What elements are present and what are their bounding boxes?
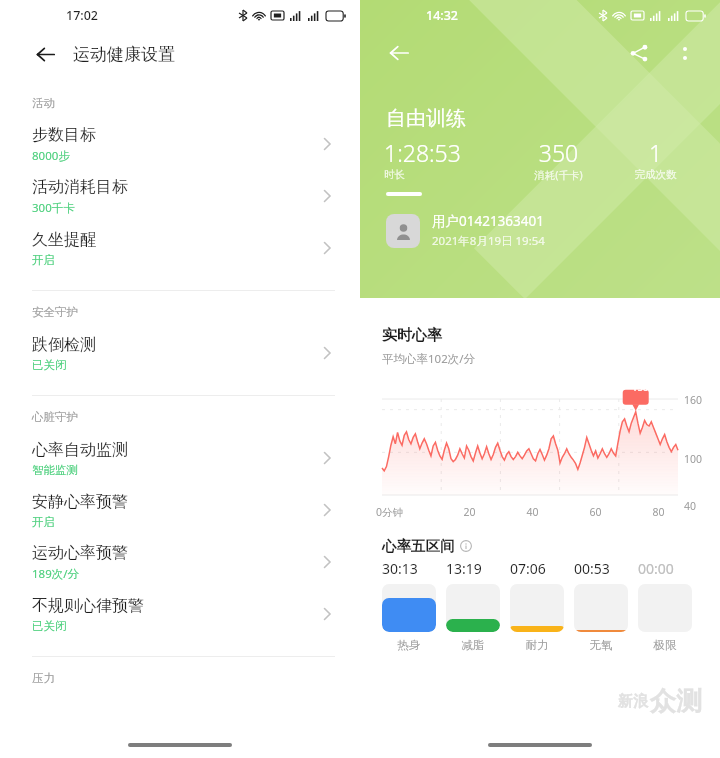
staticText: 60	[564, 505, 627, 519]
staticText: 40	[684, 499, 697, 513]
staticText: 安静心率预警	[32, 492, 128, 512]
staticText: 17:02	[66, 7, 99, 24]
staticText: 安全守护	[32, 305, 78, 319]
staticText: 减脂	[446, 638, 500, 652]
staticText: 无氧	[574, 638, 628, 652]
staticText: 自由训练	[386, 106, 466, 131]
staticText: 已关闭	[32, 619, 67, 633]
staticText: 心率自动监测	[32, 440, 128, 460]
staticText: 100	[684, 452, 703, 466]
button[interactable]: 久坐提醒	[0, 222, 360, 274]
staticText: 开启	[32, 253, 55, 267]
staticText: 热身	[382, 638, 436, 652]
staticText: 已关闭	[32, 358, 67, 372]
staticText: 1	[607, 137, 704, 168]
staticText: 消耗(千卡)	[510, 168, 607, 182]
staticText: 2021年8月19日 19:54	[432, 233, 545, 249]
staticText: 不规则心律预警	[32, 596, 144, 616]
staticText: 07:06	[510, 559, 574, 578]
staticText: 运动健康设置	[73, 44, 175, 65]
staticText: 智能监测	[32, 463, 78, 477]
staticText: 00:00	[638, 559, 702, 578]
staticText: 心率五区间	[382, 537, 455, 555]
staticText: 14:32	[426, 7, 459, 24]
staticText: 活动消耗目标	[32, 177, 128, 197]
staticText: 运动心率预警	[32, 543, 128, 563]
staticText: 1:28:53	[384, 137, 510, 168]
staticText: 心脏守护	[32, 410, 78, 424]
staticText: 实时心率	[382, 326, 442, 345]
staticText: 步数目标	[32, 125, 96, 145]
button[interactable]: More options	[670, 38, 700, 68]
staticText: 0分钟	[376, 505, 438, 519]
staticText: 300千卡	[32, 200, 75, 216]
staticText: 156	[632, 381, 649, 394]
staticText: 耐力	[510, 638, 564, 652]
staticText: 新浪	[618, 692, 648, 711]
button[interactable]: 不规则心律预警	[0, 588, 360, 640]
button[interactable]: 跌倒检测	[0, 327, 360, 379]
staticText: 跌倒检测	[32, 335, 96, 355]
staticText: 完成次数	[607, 168, 704, 181]
staticText: 活动	[32, 96, 55, 110]
button[interactable]: Back	[30, 39, 60, 69]
staticText: 开启	[32, 515, 55, 529]
staticText: 80	[627, 505, 690, 519]
staticText: 13:19	[446, 559, 510, 578]
staticText: 用户01421363401	[432, 212, 544, 230]
staticText: 8000步	[32, 148, 70, 164]
button[interactable]: 活动消耗目标	[0, 170, 360, 222]
button[interactable]: 安静心率预警	[0, 484, 360, 536]
staticText: 平均心率102次/分	[382, 351, 476, 367]
staticText: 189次/分	[32, 566, 80, 582]
staticText: 30:13	[382, 559, 446, 578]
staticText: 众测	[650, 685, 702, 718]
staticText: 久坐提醒	[32, 230, 96, 250]
staticText: 时长	[384, 168, 510, 181]
button[interactable]: Share	[624, 38, 654, 68]
staticText: 压力	[32, 671, 55, 685]
staticText: 20	[438, 505, 501, 519]
staticText: 160	[684, 393, 703, 407]
button[interactable]: 心率自动监测	[0, 432, 360, 484]
button[interactable]: Back	[384, 38, 414, 68]
staticText: 极限	[638, 638, 692, 652]
button[interactable]: 步数目标	[0, 118, 360, 170]
staticText: 40	[501, 505, 564, 519]
staticText: 00:53	[574, 559, 638, 578]
button[interactable]: 运动心率预警	[0, 536, 360, 588]
staticText: 350	[510, 137, 607, 168]
